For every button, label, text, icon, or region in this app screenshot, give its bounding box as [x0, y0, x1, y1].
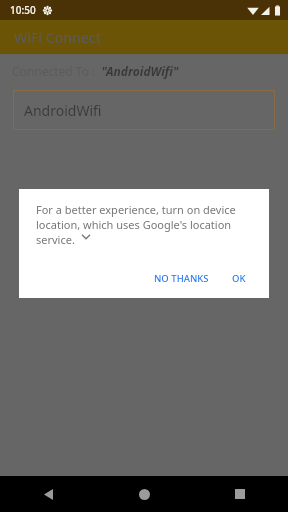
staticText: Connected To : "AndroidWifi"	[12, 63, 179, 79]
button[interactable]: OK	[227, 268, 251, 289]
button[interactable]: AndroidWifi	[13, 90, 275, 130]
staticText: 10:50	[10, 3, 36, 17]
button[interactable]: Recent apps	[222, 476, 258, 512]
staticText: AndroidWifi	[24, 101, 102, 120]
button[interactable]: NO THANKS	[149, 268, 214, 289]
staticText: NO THANKS	[154, 272, 209, 285]
other: Settings	[43, 6, 52, 15]
staticText: WiFi Connect	[14, 28, 102, 47]
button[interactable]: Back	[30, 476, 66, 512]
staticText: For a better experience, turn on device …	[36, 202, 236, 247]
staticText: OK	[232, 272, 246, 285]
button[interactable]: Home	[126, 476, 162, 512]
